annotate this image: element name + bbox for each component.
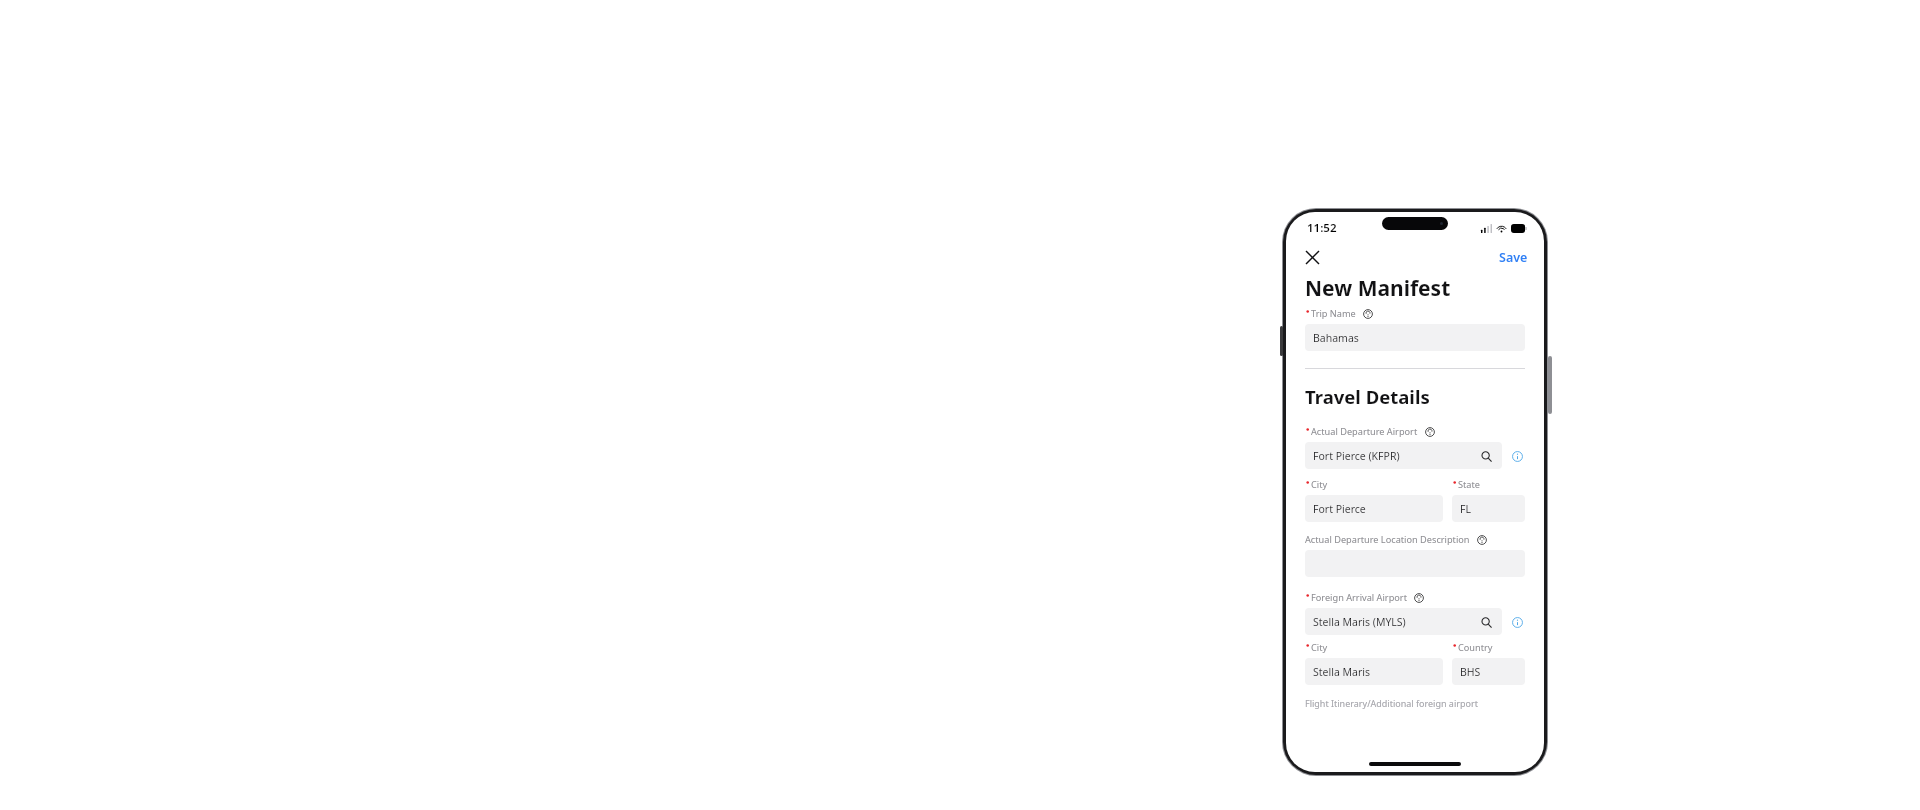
staticText: New Manifest (1305, 274, 1451, 303)
button[interactable]: Fort Pierce (KFPR) (1305, 442, 1502, 469)
staticText: Travel Details (1305, 384, 1430, 409)
staticText: City (1311, 478, 1328, 491)
button[interactable]: Close (1298, 243, 1326, 271)
button[interactable]: Stella Maris (1305, 658, 1443, 685)
button[interactable]: Search (1478, 448, 1494, 464)
staticText: Fort Pierce (KFPR) (1313, 449, 1400, 463)
staticText: Save (1499, 249, 1528, 266)
staticText: Actual Departure Airport (1311, 425, 1418, 438)
button[interactable]: Help: Actual Departure Location Descript… (1475, 533, 1488, 546)
staticText: BHS (1460, 665, 1481, 679)
staticText: Stella Maris (1313, 665, 1371, 679)
staticText: Actual Departure Location Description (1305, 533, 1470, 546)
staticText: Country (1458, 641, 1493, 654)
button[interactable]: Help: Foreign Arrival Airport (1412, 591, 1425, 604)
button[interactable]: FL (1452, 495, 1525, 522)
button[interactable]: Bahamas (1305, 324, 1525, 351)
button[interactable]: Help: Trip Name (1361, 307, 1374, 320)
button[interactable]: Information (1509, 448, 1525, 464)
button[interactable]: Save (1483, 245, 1544, 270)
staticText: City (1311, 641, 1328, 654)
staticText: Bahamas (1313, 331, 1359, 345)
staticText: Flight Itinerary/Additional foreign airp… (1305, 697, 1478, 709)
staticText: Trip Name (1311, 307, 1356, 320)
staticText: Stella Maris (MYLS) (1313, 615, 1406, 629)
staticText: State (1458, 478, 1481, 491)
button[interactable]: Information (1509, 614, 1525, 630)
button[interactable]: Help: Actual Departure Airport (1423, 425, 1436, 438)
button[interactable]: Fort Pierce (1305, 495, 1443, 522)
button[interactable]: Stella Maris (MYLS) (1305, 608, 1502, 635)
staticText: Foreign Arrival Airport (1311, 591, 1407, 604)
button[interactable]: Search (1478, 614, 1494, 630)
staticText: 11:52 (1307, 220, 1337, 236)
staticText: Fort Pierce (1313, 502, 1366, 516)
button[interactable]: BHS (1452, 658, 1525, 685)
staticText: FL (1460, 502, 1471, 516)
